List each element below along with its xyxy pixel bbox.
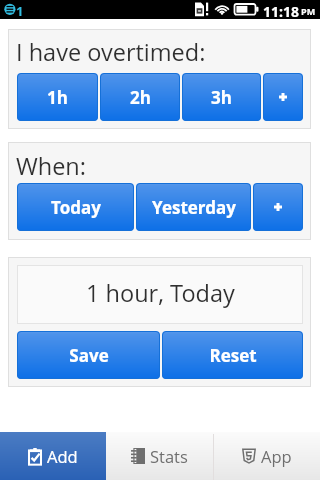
staticText: App (261, 445, 292, 467)
staticText: PM (301, 5, 316, 17)
staticText: Save (69, 344, 109, 367)
staticText: 1 hour, Today (86, 277, 235, 309)
staticText: I have overtimed: (16, 36, 206, 68)
staticText: Reset (209, 344, 257, 367)
staticText: Stats (150, 445, 188, 467)
staticText: When: (16, 150, 87, 182)
button[interactable]: Reset (162, 331, 303, 379)
staticText: Today (51, 196, 101, 219)
button[interactable]: App (213, 432, 320, 480)
button[interactable]: Save (17, 331, 160, 379)
staticText: 2h (130, 86, 151, 109)
staticText: Add (47, 445, 78, 467)
button[interactable]: 2h (100, 73, 180, 121)
button[interactable]: Add custom amount (263, 73, 303, 121)
staticText: 1 (16, 2, 24, 20)
staticText: Yesterday (152, 196, 236, 219)
staticText: 3h (211, 86, 232, 109)
button[interactable]: Add (0, 432, 106, 480)
button[interactable]: Yesterday (136, 183, 251, 231)
button[interactable]: 3h (182, 73, 261, 121)
button[interactable]: Today (17, 183, 134, 231)
staticText: 1h (47, 86, 68, 109)
button[interactable]: Add custom amount (253, 183, 303, 231)
button[interactable]: Stats (106, 432, 213, 480)
button[interactable]: 1h (17, 73, 98, 121)
staticText: 11:18 (263, 2, 299, 21)
